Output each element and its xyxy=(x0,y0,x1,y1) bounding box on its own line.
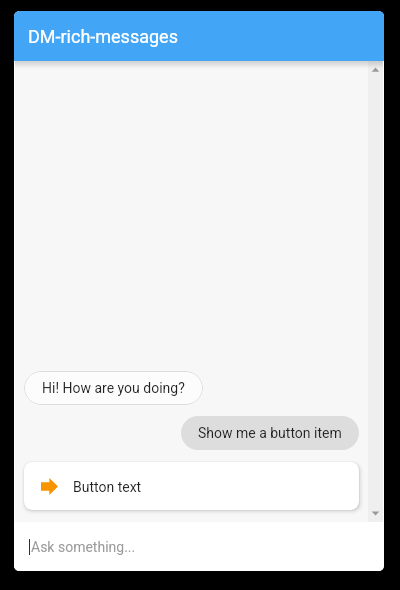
button[interactable]: Ask something... xyxy=(14,522,384,571)
button[interactable]: Scroll up xyxy=(368,61,383,79)
button[interactable]: Button text xyxy=(24,462,359,510)
staticText: Ask something... xyxy=(31,539,136,555)
button[interactable]: Show me a button item xyxy=(181,416,359,450)
button[interactable]: DM-rich-messages xyxy=(14,11,384,61)
staticText: Show me a button item xyxy=(198,425,342,441)
staticText: DM-rich-messages xyxy=(28,26,178,47)
staticText: Hi! How are you doing? xyxy=(42,380,185,396)
button[interactable]: Hi! How are you doing? xyxy=(24,371,203,405)
button[interactable]: Scroll down xyxy=(368,504,383,522)
staticText: Button text xyxy=(73,479,142,495)
